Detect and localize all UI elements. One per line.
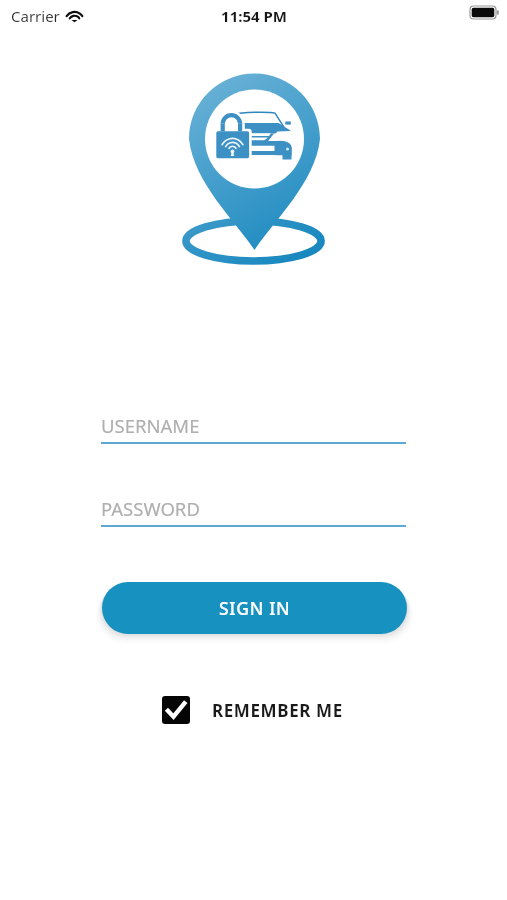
- staticText: USERNAME: [101, 413, 200, 438]
- button[interactable]: USERNAME: [101, 413, 406, 444]
- staticText: Carrier: [11, 6, 60, 26]
- button[interactable]: SIGN IN: [102, 582, 407, 634]
- staticText: REMEMBER ME: [212, 699, 343, 722]
- staticText: SIGN IN: [219, 596, 291, 620]
- button[interactable]: REMEMBER ME: [162, 696, 343, 724]
- button[interactable]: PASSWORD: [101, 496, 406, 527]
- staticText: PASSWORD: [101, 496, 200, 521]
- staticText: 11:54 PM: [221, 6, 287, 26]
